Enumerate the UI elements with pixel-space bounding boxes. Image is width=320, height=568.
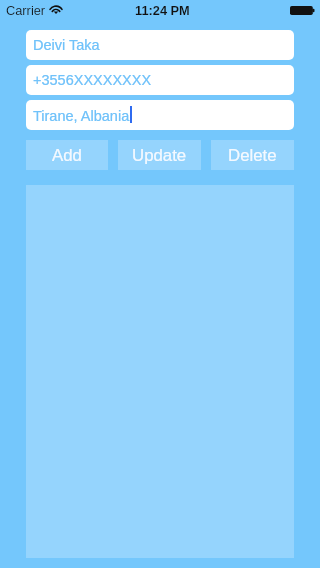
- other: Battery full: [290, 6, 315, 15]
- staticText: 11:24 PM: [135, 3, 190, 17]
- staticText: Carrier: [6, 3, 46, 17]
- button[interactable]: Delete: [211, 140, 294, 170]
- staticText: Deivi Taka: [33, 37, 100, 53]
- staticText: Delete: [228, 146, 277, 165]
- button[interactable]: Add: [26, 140, 108, 170]
- staticText: Update: [132, 146, 187, 165]
- staticText: Add: [52, 146, 82, 165]
- button[interactable]: Deivi Taka: [26, 30, 294, 60]
- button[interactable]: +3556XXXXXXXX: [26, 65, 294, 95]
- staticText: +3556XXXXXXXX: [33, 72, 152, 88]
- button[interactable]: Tirane, Albania: [26, 100, 294, 130]
- staticText: Tirane, Albania: [33, 108, 130, 124]
- other: Wi-Fi signal: [50, 4, 62, 13]
- button[interactable]: Update: [118, 140, 201, 170]
